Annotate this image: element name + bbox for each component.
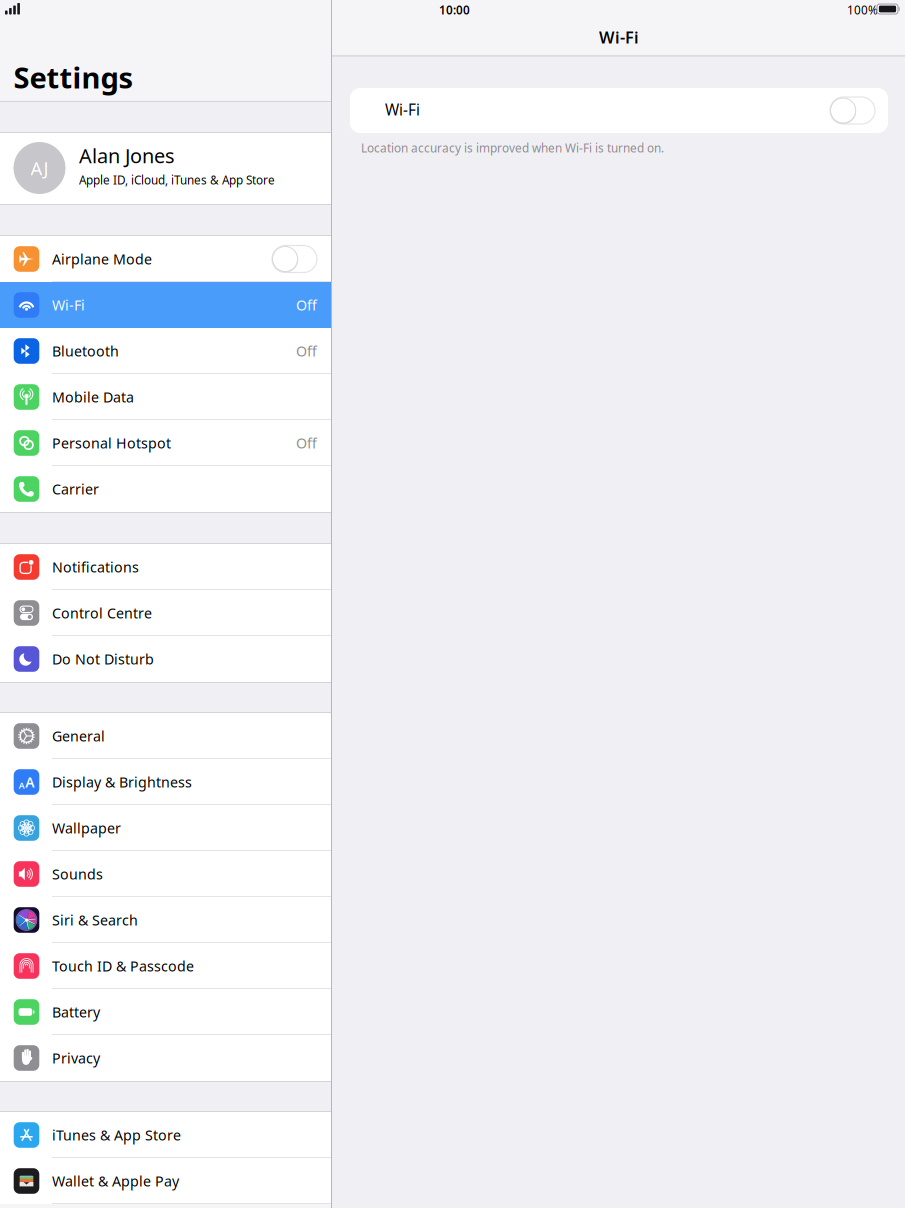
button[interactable]: Mobile Data [0, 374, 331, 420]
staticText: Touch ID & Passcode [52, 956, 194, 976]
staticText: Off [296, 341, 317, 361]
staticText: Battery [52, 1002, 100, 1022]
button[interactable]: Bluetooth [0, 328, 331, 374]
staticText: Location accuracy is improved when Wi-Fi… [361, 140, 664, 156]
staticText: Wi-Fi [599, 26, 639, 48]
button[interactable]: Privacy [0, 1035, 331, 1081]
button[interactable]: Notifications [0, 544, 331, 590]
staticText: General [52, 726, 105, 746]
button[interactable]: Carrier [0, 466, 331, 512]
staticText: Settings [13, 57, 133, 97]
button[interactable]: Battery [0, 989, 331, 1035]
button[interactable]: A [0, 759, 331, 805]
button[interactable]: Touch ID & Passcode [0, 943, 331, 989]
staticText: Display & Brightness [52, 772, 192, 792]
staticText: Do Not Disturb [52, 649, 154, 669]
button[interactable]: AJ [0, 133, 331, 204]
staticText: Control Centre [52, 603, 152, 623]
staticText: A [25, 773, 34, 791]
button[interactable]: Do Not Disturb [0, 636, 331, 682]
staticText: Carrier [52, 479, 99, 499]
staticText: AJ [30, 155, 48, 181]
button[interactable]: Personal Hotspot [0, 420, 331, 466]
staticText: Off [296, 295, 317, 315]
staticText: iTunes & App Store [52, 1125, 181, 1145]
staticText: Sounds [52, 864, 103, 884]
staticText: 100% [847, 2, 878, 18]
button[interactable]: Wallpaper [0, 805, 331, 851]
staticText: Notifications [52, 557, 139, 577]
staticText: Bluetooth [52, 341, 119, 361]
button[interactable]: iTunes & App Store [0, 1112, 331, 1158]
staticText: Wi-Fi [385, 99, 420, 120]
staticText: 10:00 [439, 2, 470, 18]
staticText: Wi-Fi [52, 295, 85, 315]
button[interactable]: Airplane Mode [0, 236, 331, 282]
button[interactable]: Siri & Search [0, 897, 331, 943]
staticText: Wallet & Apple Pay [52, 1171, 179, 1191]
button[interactable]: Wi-Fi [0, 282, 331, 328]
staticText: Off [296, 433, 317, 453]
staticText: Mobile Data [52, 387, 134, 407]
button[interactable]: Control Centre [0, 590, 331, 636]
staticText: Alan Jones [79, 142, 175, 169]
button[interactable]: Wallet & Apple Pay [0, 1158, 331, 1204]
staticText: A [19, 779, 25, 791]
button[interactable]: Sounds [0, 851, 331, 897]
button[interactable]: General [0, 713, 331, 759]
staticText: Apple ID, iCloud, iTunes & App Store [79, 172, 275, 188]
staticText: Personal Hotspot [52, 433, 171, 453]
staticText: Privacy [52, 1048, 100, 1068]
staticText: Siri & Search [52, 910, 138, 930]
staticText: Wallpaper [52, 818, 121, 838]
staticText: Airplane Mode [52, 249, 152, 269]
